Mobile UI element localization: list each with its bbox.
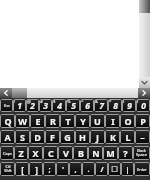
button[interactable]: Ctl Shft: [0, 162, 15, 176]
staticText: R: [50, 115, 56, 127]
button[interactable]: A: [0, 130, 15, 144]
staticText: ]: [35, 164, 38, 175]
button[interactable]: #: [39, 99, 52, 112]
staticText: ): [137, 99, 139, 105]
button[interactable]: N: [88, 146, 103, 160]
button[interactable]: ]: [29, 162, 43, 176]
staticText: [: [21, 164, 24, 175]
staticText: K: [110, 131, 116, 143]
staticText: Esc: [4, 103, 10, 108]
button[interactable]: R: [45, 114, 60, 128]
button[interactable]: M: [103, 146, 118, 160]
button[interactable]: |: [121, 162, 134, 176]
staticText: Back Space: [136, 148, 147, 158]
button[interactable]: Horizontal scroll thumb: [12, 88, 27, 98]
button[interactable]: ^: [80, 99, 94, 112]
staticText: W: [18, 115, 27, 127]
button[interactable]: W: [15, 114, 30, 128]
button[interactable]: &: [94, 99, 108, 112]
staticText: 6: [85, 100, 90, 112]
button[interactable]: ': [56, 162, 69, 176]
staticText: C: [48, 147, 54, 159]
button[interactable]: Z: [14, 146, 28, 160]
button[interactable]: Scroll right: [138, 88, 150, 98]
button[interactable]: Esc: [0, 99, 13, 112]
staticText: /: [100, 164, 104, 174]
staticText: $: [53, 99, 56, 105]
staticText: 5: [71, 100, 76, 112]
button[interactable]: *: [108, 99, 122, 112]
button[interactable]: Scroll left: [0, 88, 12, 98]
staticText: (: [123, 99, 125, 105]
button[interactable]: P: [135, 114, 150, 128]
button[interactable]: H: [75, 130, 90, 144]
staticText: P: [140, 115, 146, 127]
staticText: ': [62, 164, 64, 174]
button[interactable]: V: [58, 146, 73, 160]
button[interactable]: %: [66, 99, 80, 112]
staticText: Z: [18, 147, 24, 159]
button[interactable]: T: [60, 114, 75, 128]
staticText: B: [78, 147, 84, 159]
button[interactable]: X: [28, 146, 43, 160]
staticText: |: [125, 164, 130, 174]
button[interactable]: K: [105, 130, 120, 144]
staticText: ,: [74, 164, 77, 174]
staticText: □: [111, 165, 118, 173]
button[interactable]: $: [52, 99, 66, 112]
staticText: L: [125, 131, 131, 143]
button[interactable]: □: [108, 162, 121, 176]
button[interactable]: ;: [43, 162, 56, 176]
button[interactable]: /: [95, 162, 108, 176]
button[interactable]: C: [43, 146, 58, 160]
button[interactable]: [: [15, 162, 29, 176]
button[interactable]: .: [82, 162, 95, 176]
button[interactable]: Q: [0, 114, 15, 128]
staticText: Caps: [3, 151, 12, 156]
staticText: .: [87, 164, 90, 174]
button[interactable]: –: [135, 130, 150, 144]
button[interactable]: G: [60, 130, 75, 144]
staticText: –: [140, 131, 145, 143]
button[interactable]: J: [90, 130, 105, 144]
staticText: 3: [43, 100, 48, 112]
button[interactable]: D: [30, 130, 45, 144]
staticText: 1: [17, 100, 22, 112]
staticText: F: [50, 131, 55, 143]
button[interactable]: Scroll down: [139, 77, 150, 88]
staticText: O: [124, 115, 132, 127]
staticText: J: [96, 131, 99, 143]
button[interactable]: !: [13, 99, 26, 112]
staticText: X: [32, 147, 39, 159]
button[interactable]: F: [45, 130, 60, 144]
staticText: Y: [80, 115, 86, 127]
button[interactable]: B: [73, 146, 88, 160]
button[interactable]: S: [15, 130, 30, 144]
button[interactable]: ,: [69, 162, 82, 176]
staticText: A: [4, 131, 11, 143]
button[interactable]: Caps: [0, 146, 14, 160]
button[interactable]: ): [136, 99, 150, 112]
staticText: S: [20, 131, 25, 143]
staticText: N: [92, 147, 100, 159]
button[interactable]: U: [90, 114, 105, 128]
staticText: Enter: [137, 167, 147, 172]
button[interactable]: @: [26, 99, 39, 112]
staticText: T: [65, 115, 71, 127]
button[interactable]: Enter: [134, 162, 150, 176]
button[interactable]: Back Space: [133, 146, 150, 160]
staticText: ^: [81, 99, 84, 105]
staticText: !: [14, 99, 16, 105]
button[interactable]: Vertical scroll thumb: [139, 0, 150, 13]
staticText: D: [34, 131, 41, 143]
button[interactable]: (: [122, 99, 136, 112]
button[interactable]: I: [105, 114, 120, 128]
button[interactable]: O: [120, 114, 135, 128]
staticText: @: [27, 99, 31, 105]
staticText: U: [94, 115, 101, 127]
staticText: ;: [48, 164, 51, 174]
button[interactable]: Y: [75, 114, 90, 128]
button[interactable]: ?: [118, 146, 133, 160]
button[interactable]: E: [30, 114, 45, 128]
button[interactable]: L: [120, 130, 135, 144]
